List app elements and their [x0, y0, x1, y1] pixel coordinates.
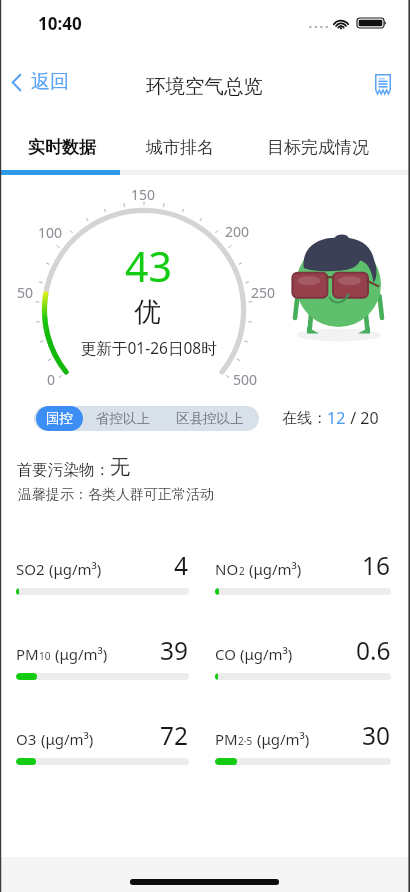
button[interactable]: 实时数据: [23, 132, 101, 162]
staticText: 实时数据: [28, 137, 96, 158]
staticText: 0: [47, 370, 56, 389]
staticText: 200: [225, 222, 250, 241]
staticText: PM: [16, 644, 39, 664]
button[interactable]: SO2: [16, 540, 189, 582]
staticText: (μg/m³): [236, 644, 293, 664]
staticText: 43: [125, 238, 172, 294]
staticText: 0.6: [356, 634, 391, 667]
staticText: 区县控以上: [176, 410, 244, 427]
staticText: / 20: [346, 407, 379, 429]
staticText: CO: [215, 644, 236, 664]
staticText: 12: [327, 407, 346, 429]
button[interactable]: PM: [215, 710, 391, 752]
button[interactable]: 国控: [36, 406, 83, 431]
button[interactable]: NO: [215, 540, 391, 582]
staticText: 首要污染物：: [17, 460, 110, 480]
button[interactable]: 区县控以上: [163, 406, 257, 431]
staticText: (μg/m³): [51, 644, 108, 664]
staticText: 50: [17, 283, 34, 302]
staticText: 2·5: [238, 734, 253, 748]
staticText: 无: [110, 455, 130, 480]
staticText: 500: [233, 370, 258, 389]
button[interactable]: 报表: [367, 66, 399, 102]
button[interactable]: O3: [16, 710, 189, 752]
staticText: 更新于01-26日08时: [81, 337, 217, 358]
staticText: 39: [160, 634, 189, 667]
staticText: 温馨提示：各类人群可正常活动: [18, 486, 214, 504]
button[interactable]: CO: [215, 625, 391, 667]
button[interactable]: 返回: [6, 64, 79, 100]
staticText: NO: [215, 559, 239, 579]
button[interactable]: 目标完成情况: [262, 132, 374, 162]
staticText: 2: [239, 564, 245, 578]
staticText: 72: [160, 719, 189, 752]
staticText: 250: [251, 283, 276, 302]
staticText: 10:40: [38, 12, 82, 35]
staticText: 10: [39, 649, 51, 663]
staticText: 100: [38, 223, 63, 242]
button[interactable]: PM: [16, 625, 189, 667]
staticText: 城市排名: [146, 137, 214, 158]
staticText: (μg/m³): [37, 729, 94, 749]
staticText: (μg/m³): [245, 559, 302, 579]
staticText: 环境空气总览: [146, 74, 263, 99]
staticText: O3: [16, 729, 37, 749]
staticText: (μg/m³): [45, 559, 102, 579]
staticText: 30: [362, 719, 391, 752]
staticText: 国控: [46, 410, 73, 427]
staticText: 在线：: [282, 409, 327, 428]
staticText: PM: [215, 729, 238, 749]
staticText: 省控以上: [96, 410, 150, 427]
staticText: SO2: [16, 559, 45, 579]
staticText: 16: [362, 549, 391, 582]
staticText: 返回: [31, 70, 69, 94]
staticText: 150: [131, 185, 156, 204]
staticText: 目标完成情况: [267, 137, 369, 158]
button[interactable]: 省控以上: [83, 406, 163, 431]
staticText: 优: [134, 295, 161, 329]
button[interactable]: 城市排名: [141, 132, 219, 162]
staticText: 4: [174, 549, 189, 582]
staticText: (μg/m³): [253, 729, 310, 749]
